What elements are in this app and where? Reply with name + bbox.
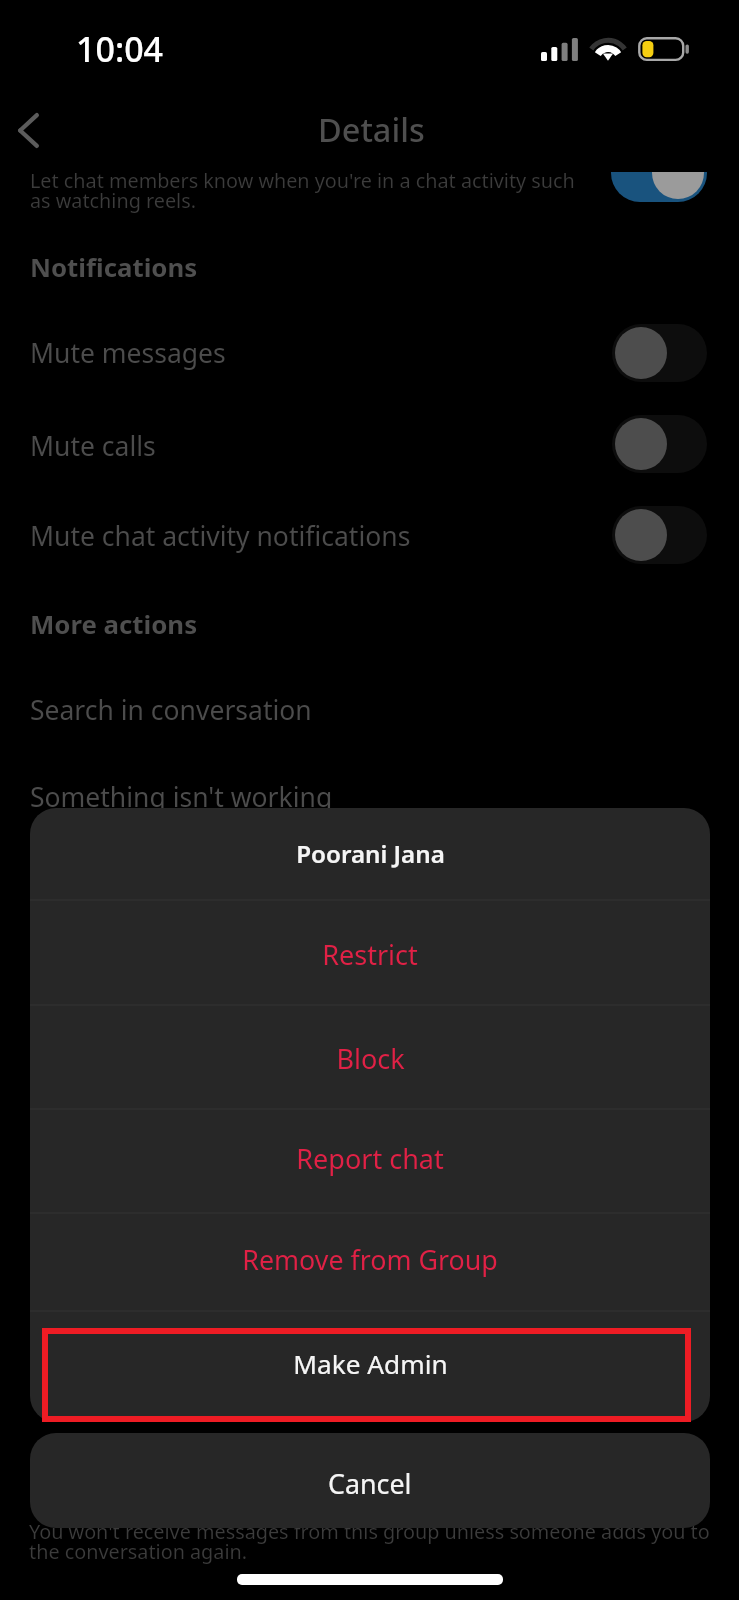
button[interactable]: Toggle Mute calls — [612, 415, 707, 473]
button[interactable]: Report chat — [30, 1106, 710, 1210]
staticText: Poorani Jana — [296, 837, 445, 870]
staticText: Something isn't working — [30, 779, 333, 815]
button[interactable]: Make Admin — [30, 1309, 710, 1418]
staticText: Notifications — [30, 249, 198, 284]
staticText: Mute chat activity notifications — [30, 518, 411, 554]
staticText: Mute calls — [30, 428, 156, 464]
staticText: Restrict — [322, 936, 418, 973]
staticText: Remove from Group — [242, 1241, 498, 1278]
button[interactable]: Restrict — [30, 902, 710, 1007]
button[interactable]: Mute calls — [0, 399, 739, 491]
staticText: Cancel — [328, 1465, 412, 1502]
button[interactable]: Back — [0, 96, 58, 164]
staticText: Make Admin — [293, 1346, 448, 1382]
button[interactable]: Search in conversation — [0, 664, 739, 748]
staticText: More actions — [30, 606, 198, 641]
staticText: You won't receive messages from this gro… — [29, 1518, 710, 1564]
staticText: Report chat — [296, 1140, 444, 1177]
button[interactable]: Cancel — [30, 1433, 710, 1528]
staticText: Let chat members know when you're in a c… — [30, 172, 575, 213]
button[interactable]: Toggle Mute messages — [612, 324, 707, 382]
button[interactable]: Poorani Jana — [30, 808, 710, 899]
button[interactable]: Toggle Mute chat activity notifications — [612, 506, 707, 564]
button[interactable]: Something isn't working — [0, 751, 739, 808]
staticText: Mute messages — [30, 335, 226, 371]
button[interactable]: Mute messages — [0, 307, 739, 399]
staticText: Search in conversation — [30, 692, 312, 728]
staticText: Block — [336, 1040, 405, 1077]
staticText: Details — [318, 107, 425, 151]
button[interactable]: Block — [30, 1006, 710, 1110]
staticText: 10:04 — [76, 26, 164, 72]
button[interactable] — [611, 172, 707, 202]
button[interactable]: Mute chat activity notifications — [0, 491, 739, 581]
button[interactable]: Remove from Group — [30, 1210, 710, 1308]
